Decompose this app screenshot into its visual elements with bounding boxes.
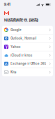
staticText: Outlook, Hotmail [10, 37, 36, 40]
button[interactable]: iCloud ir kitos [2, 51, 53, 59]
staticText: Nustatykite el. paštą [4, 18, 38, 22]
button[interactable]: y [2, 43, 53, 51]
staticText: Yahoo [10, 45, 20, 49]
button[interactable]: Kita [2, 68, 53, 76]
button[interactable]: Exchange ir Office 365 [2, 60, 53, 68]
staticText: iCloud ir kitos [10, 53, 32, 57]
staticText: Google [10, 28, 21, 32]
staticText: y [5, 44, 7, 49]
staticText: Kita [10, 70, 16, 74]
staticText: Exchange ir Office 365 [10, 62, 46, 65]
button[interactable]: Outlook, Hotmail [2, 34, 53, 42]
button[interactable]: Google [2, 26, 53, 34]
staticText: 9:41 [4, 3, 10, 6]
